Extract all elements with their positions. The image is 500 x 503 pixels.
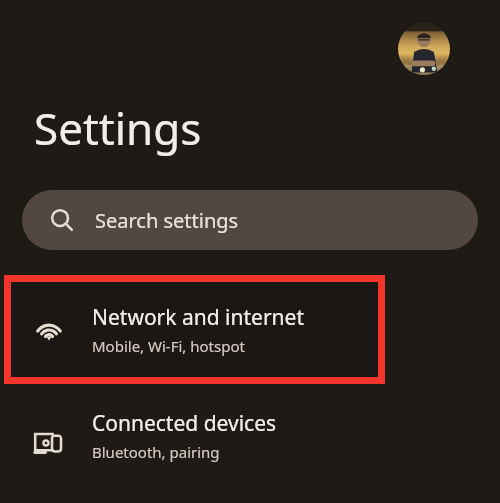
button[interactable]: Account avatar bbox=[398, 23, 450, 75]
button[interactable]: Search settings bbox=[22, 190, 478, 250]
button[interactable]: Connected devices bbox=[5, 393, 384, 493]
staticText: Mobile, Wi-Fi, hotspot bbox=[92, 336, 245, 356]
staticText: Connected devices bbox=[92, 409, 277, 438]
staticText: Bluetooth, pairing bbox=[92, 442, 220, 462]
button[interactable]: Network and internet bbox=[5, 276, 384, 383]
staticText: Settings bbox=[34, 98, 202, 158]
staticText: Network and internet bbox=[92, 303, 304, 332]
staticText: Search settings bbox=[95, 207, 239, 234]
